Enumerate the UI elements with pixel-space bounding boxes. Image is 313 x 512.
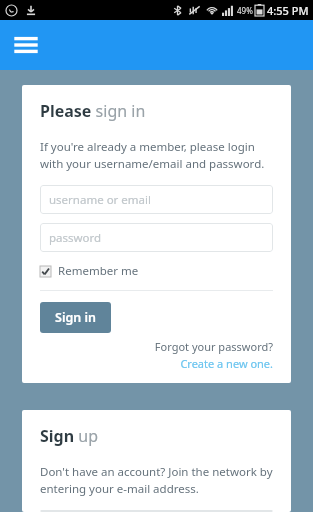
staticText: Sign in — [55, 309, 96, 326]
staticText: Please sign in — [40, 100, 146, 122]
button[interactable]: username or email — [40, 185, 273, 214]
staticText: If you're already a member, please login… — [40, 139, 265, 171]
button[interactable]: Open navigation menu — [9, 28, 43, 62]
button[interactable]: Sign in — [40, 302, 111, 333]
staticText: Don't have an account? Join the network … — [40, 464, 273, 496]
staticText: 4:55 PM — [267, 3, 309, 18]
staticText: Remember me — [58, 263, 139, 279]
staticText: 49% — [237, 5, 253, 16]
staticText: Sign up — [40, 425, 99, 447]
button[interactable]: password — [40, 223, 273, 252]
staticText: password — [49, 230, 102, 246]
button[interactable]: Remember me — [40, 263, 139, 279]
staticText: username or email — [49, 192, 151, 208]
button[interactable]: Create a new one. — [40, 356, 273, 371]
button[interactable]: Forgot your password? — [40, 339, 273, 354]
